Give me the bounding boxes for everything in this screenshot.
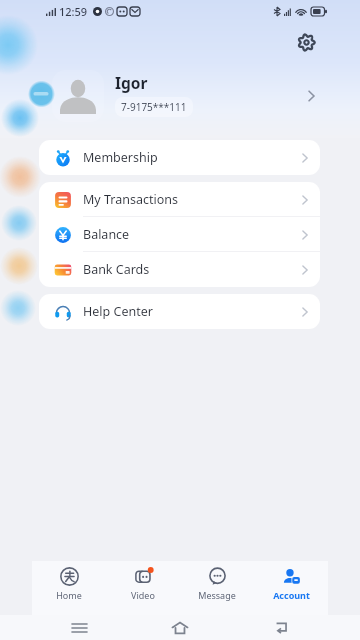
staticText: Message	[198, 589, 236, 601]
button[interactable]: Help Center	[39, 294, 320, 329]
staticText: Bank Cards	[83, 261, 150, 278]
button[interactable]: Settings	[293, 29, 319, 55]
button[interactable]: My Transactions	[39, 182, 320, 217]
staticText: My Transactions	[83, 191, 178, 208]
button[interactable]: Home	[32, 561, 106, 615]
button[interactable]: Recents	[57, 615, 101, 640]
staticText: Balance	[83, 226, 130, 243]
button[interactable]: Membership	[39, 140, 320, 175]
button[interactable]: Back	[259, 615, 303, 640]
staticText: Account	[273, 589, 310, 601]
staticText: 7-9175***111	[121, 100, 187, 114]
button[interactable]: Video	[106, 561, 180, 615]
staticText: Help Center	[83, 303, 153, 320]
staticText: Igor	[115, 72, 148, 93]
button[interactable]: Balance	[39, 217, 320, 252]
staticText: Membership	[83, 149, 158, 166]
button[interactable]: Home	[158, 615, 202, 640]
button[interactable]: Igor	[32, 69, 328, 123]
button[interactable]: Bank Cards	[39, 252, 320, 287]
staticText: 12:59	[59, 4, 88, 19]
button[interactable]: Message	[180, 561, 254, 615]
staticText: Video	[131, 589, 155, 601]
button[interactable]: Account	[254, 561, 328, 615]
staticText: Home	[56, 589, 82, 601]
